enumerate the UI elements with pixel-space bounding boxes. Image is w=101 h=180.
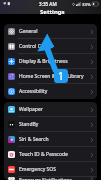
staticText: Control Center (19, 43, 54, 50)
staticText: General (19, 28, 38, 35)
staticText: Wallpaper (19, 106, 43, 113)
staticText: Touch ID & Passcode (19, 151, 68, 158)
button[interactable]: Touch ID & Passcode (4, 147, 97, 162)
staticText: 33% (82, 1, 91, 7)
button[interactable]: Wallpaper (4, 102, 97, 117)
staticText: Exposure Notifications (19, 177, 72, 180)
staticText: Accessibility (19, 88, 48, 95)
button[interactable]: Emergency SOS (4, 162, 97, 177)
button[interactable]: Exposure Notifications (4, 177, 97, 180)
staticText: Settings (40, 8, 65, 16)
button[interactable]: Siri & Search (4, 132, 97, 147)
staticText: Display & Brightness (19, 58, 68, 65)
button[interactable]: Home Screen & App Library (4, 69, 97, 84)
staticText: StandBy (19, 121, 39, 128)
staticText: 1 (58, 69, 64, 83)
staticText: Emergency SOS (19, 166, 56, 173)
staticText: 3:35 AM (39, 1, 57, 7)
button[interactable]: General (4, 24, 97, 39)
button[interactable]: Display & Brightness (4, 54, 97, 69)
staticText: Home Screen & App Library (19, 73, 84, 80)
staticText: Siri & Search (19, 136, 49, 143)
button[interactable]: Accessibility (4, 84, 97, 99)
button[interactable]: Control Center (4, 39, 97, 54)
button[interactable]: StandBy (4, 117, 97, 132)
